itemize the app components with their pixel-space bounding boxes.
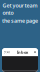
staticText: Inbox	[17, 49, 28, 55]
staticText: 9:41	[4, 50, 11, 54]
staticText: the same page	[2, 17, 38, 24]
staticText: Get your team onto	[2, 2, 37, 16]
